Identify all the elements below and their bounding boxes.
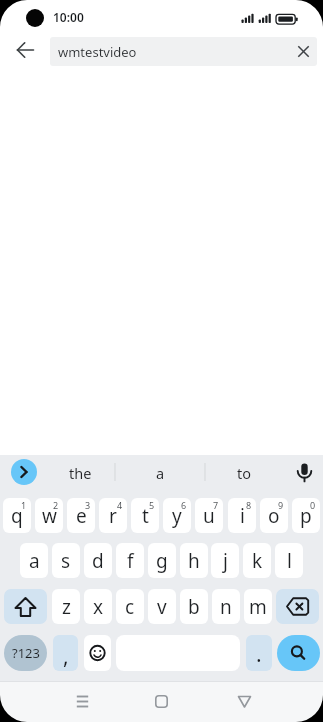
staticText: a bbox=[156, 463, 165, 483]
button[interactable]: j bbox=[211, 543, 239, 578]
staticText: 3 bbox=[85, 499, 91, 511]
staticText: 0 bbox=[310, 499, 316, 511]
button[interactable] bbox=[228, 685, 261, 718]
button[interactable]: k bbox=[243, 543, 271, 578]
staticText: 9 bbox=[278, 499, 284, 511]
button[interactable]: f bbox=[116, 543, 144, 578]
button[interactable]: x bbox=[84, 589, 112, 624]
button[interactable]: the bbox=[45, 456, 115, 489]
staticText: s bbox=[61, 548, 71, 574]
button[interactable]: w bbox=[35, 498, 63, 533]
button[interactable] bbox=[4, 589, 47, 624]
button[interactable]: t bbox=[131, 498, 159, 533]
staticText: l bbox=[287, 548, 292, 574]
staticText: q bbox=[11, 503, 23, 529]
button[interactable]: m bbox=[244, 589, 272, 624]
button[interactable] bbox=[84, 635, 111, 671]
staticText: , bbox=[63, 642, 69, 671]
staticText: 6 bbox=[181, 499, 187, 511]
button[interactable] bbox=[6, 31, 44, 69]
button[interactable]: g bbox=[148, 543, 176, 578]
button[interactable]: r bbox=[99, 498, 127, 533]
button[interactable] bbox=[276, 589, 319, 624]
button[interactable]: u bbox=[195, 498, 223, 533]
button[interactable]: p bbox=[292, 498, 320, 533]
button[interactable]: q bbox=[3, 498, 31, 533]
staticText: 5 bbox=[149, 499, 155, 511]
button[interactable]: e bbox=[67, 498, 95, 533]
button[interactable]: l bbox=[275, 543, 303, 578]
staticText: g bbox=[156, 548, 168, 574]
button[interactable]: v bbox=[148, 589, 176, 624]
staticText: j bbox=[223, 548, 228, 574]
button[interactable] bbox=[11, 459, 37, 485]
staticText: z bbox=[62, 594, 71, 620]
staticText: f bbox=[127, 548, 134, 574]
button[interactable]: . bbox=[246, 635, 272, 671]
staticText: 4 bbox=[117, 499, 123, 511]
staticText: y bbox=[172, 503, 182, 529]
staticText: w bbox=[42, 503, 57, 529]
staticText: b bbox=[188, 594, 200, 620]
button[interactable]: d bbox=[84, 543, 112, 578]
staticText: 10:00 bbox=[53, 9, 84, 25]
staticText: 1 bbox=[21, 499, 27, 511]
staticText: k bbox=[252, 548, 263, 574]
button[interactable] bbox=[66, 685, 99, 718]
staticText: u bbox=[203, 503, 215, 529]
button[interactable]: , bbox=[53, 635, 78, 671]
button[interactable]: a bbox=[20, 543, 48, 578]
staticText: d bbox=[92, 548, 104, 574]
staticText: wmtestvideo bbox=[58, 43, 137, 61]
button[interactable]: ?123 bbox=[4, 635, 47, 671]
staticText: o bbox=[268, 503, 280, 529]
staticText: the bbox=[69, 463, 92, 483]
button[interactable] bbox=[277, 635, 320, 671]
button[interactable]: n bbox=[212, 589, 240, 624]
button[interactable] bbox=[145, 685, 178, 718]
button[interactable] bbox=[288, 456, 321, 489]
staticText: a bbox=[29, 548, 40, 574]
button[interactable] bbox=[288, 37, 317, 66]
button[interactable]: s bbox=[52, 543, 80, 578]
button[interactable]: c bbox=[116, 589, 144, 624]
button[interactable]: i bbox=[228, 498, 256, 533]
staticText: v bbox=[157, 594, 167, 620]
staticText: n bbox=[220, 594, 232, 620]
button[interactable]: b bbox=[180, 589, 208, 624]
staticText: c bbox=[125, 594, 135, 620]
button[interactable]: a bbox=[120, 456, 200, 489]
staticText: ?123 bbox=[12, 644, 40, 662]
button[interactable]: z bbox=[52, 589, 80, 624]
staticText: to bbox=[237, 463, 252, 483]
staticText: 8 bbox=[246, 499, 252, 511]
button[interactable]: y bbox=[163, 498, 191, 533]
button[interactable]: wmtestvideo bbox=[50, 37, 317, 66]
staticText: h bbox=[188, 548, 200, 574]
button[interactable]: h bbox=[180, 543, 208, 578]
staticText: t bbox=[142, 503, 149, 529]
staticText: e bbox=[76, 503, 87, 529]
staticText: r bbox=[109, 503, 117, 529]
button[interactable]: to bbox=[209, 456, 279, 489]
staticText: 2 bbox=[53, 499, 59, 511]
button[interactable]: o bbox=[260, 498, 288, 533]
staticText: i bbox=[240, 503, 245, 529]
staticText: 7 bbox=[213, 499, 219, 511]
staticText: p bbox=[300, 503, 312, 529]
staticText: . bbox=[256, 640, 262, 669]
staticText: m bbox=[249, 594, 267, 620]
staticText: x bbox=[93, 594, 104, 620]
